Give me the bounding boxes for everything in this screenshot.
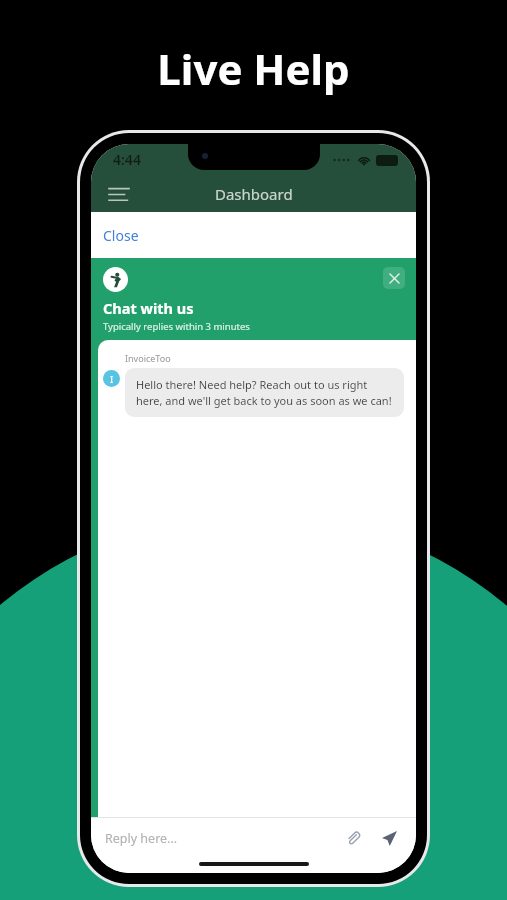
staticText: InvoiceToo — [125, 352, 171, 364]
button[interactable]: Attach file — [340, 825, 366, 851]
staticText: Hello there! Need help? Reach out to us … — [136, 377, 393, 408]
staticText: Close — [103, 226, 139, 245]
staticText: Typically replies within 3 minutes — [103, 320, 250, 333]
button[interactable]: Reply here... — [105, 830, 340, 847]
staticText: Reply here... — [105, 830, 178, 847]
staticText: Dashboard — [215, 184, 293, 204]
button[interactable]: Close chat — [383, 267, 405, 289]
button[interactable]: Close — [97, 220, 145, 251]
button[interactable]: Menu — [101, 176, 137, 212]
button[interactable]: Send — [376, 825, 402, 851]
staticText: Chat with us — [103, 298, 194, 318]
staticText: 4:44 — [113, 150, 141, 169]
staticText: I — [110, 373, 114, 385]
staticText: Live Help — [157, 40, 350, 97]
